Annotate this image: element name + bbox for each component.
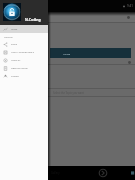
staticText: General [4,35,13,38]
button[interactable]: Back [98,168,108,178]
button[interactable]: Offer/Tell Group [0,64,48,72]
staticText: About us [11,59,21,62]
button[interactable]: Contact [0,72,48,80]
button[interactable]: Share [0,40,48,48]
button[interactable]: Home [0,25,48,33]
staticText: Share [11,43,17,46]
staticText: N-Coding [25,17,41,22]
staticText: Select the Topic you want [53,91,84,95]
staticText: Offer/Tell Group [11,67,28,70]
button[interactable]: HOME [50,48,131,58]
button[interactable]: More options [125,14,132,21]
staticText: HOME [63,52,71,55]
button[interactable]: About us [0,56,48,64]
staticText: Love N-Coding? Rate it [11,51,35,54]
staticText: Home [11,28,18,31]
button[interactable]: Keyboard [131,171,135,175]
button[interactable]: Love N-Coding? Rate it [0,48,48,56]
button[interactable]: Row options [126,59,133,66]
staticText: Contact [11,75,19,78]
staticText: 9:41 [127,4,133,8]
